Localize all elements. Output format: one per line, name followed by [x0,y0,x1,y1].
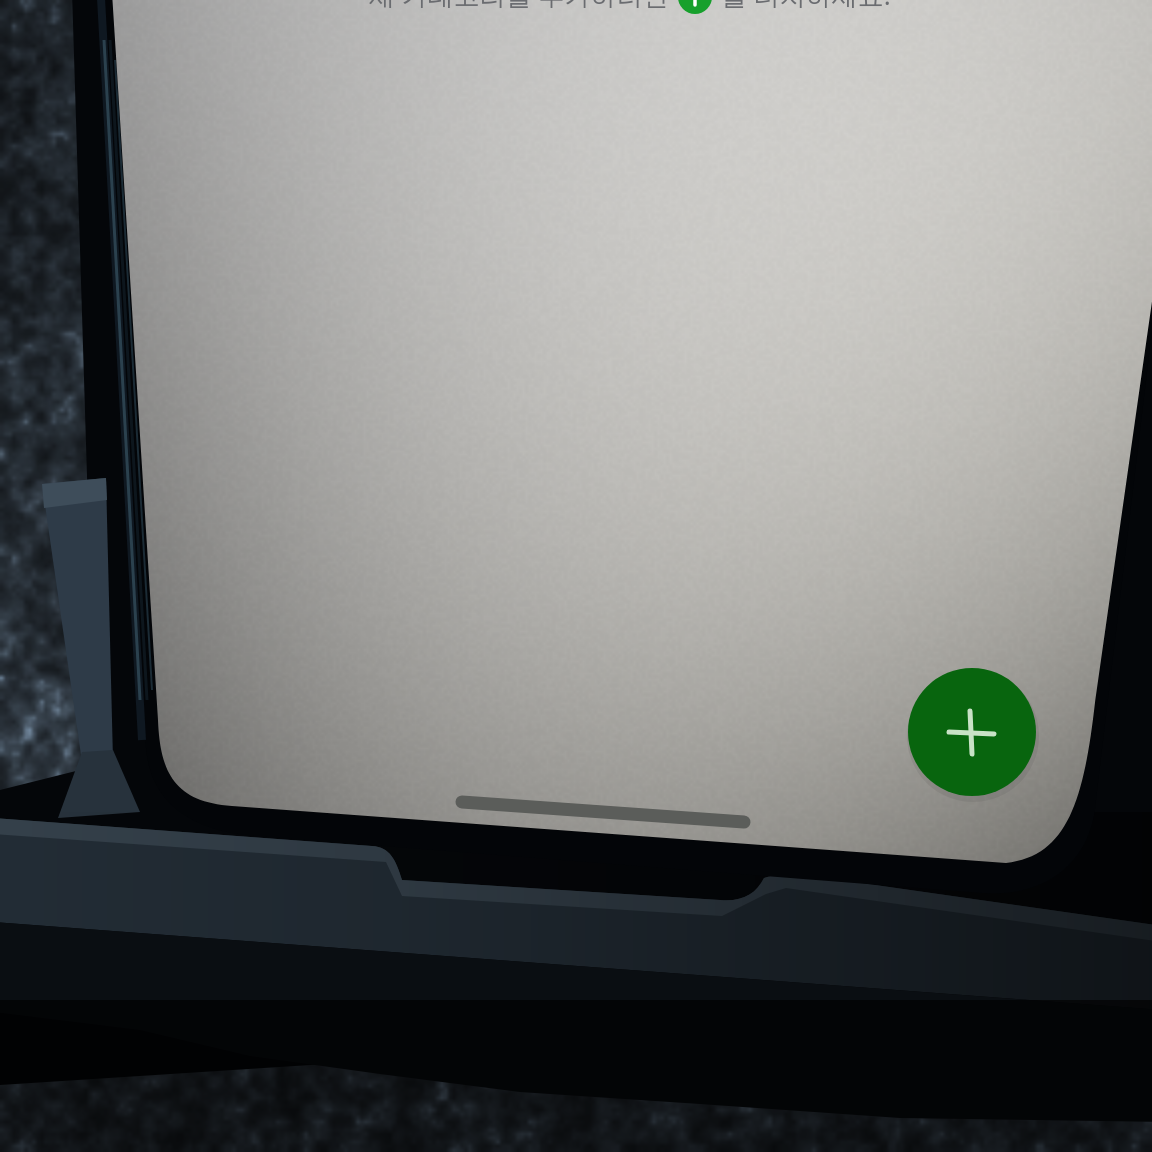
button[interactable]: Add new category [899,667,1031,799]
